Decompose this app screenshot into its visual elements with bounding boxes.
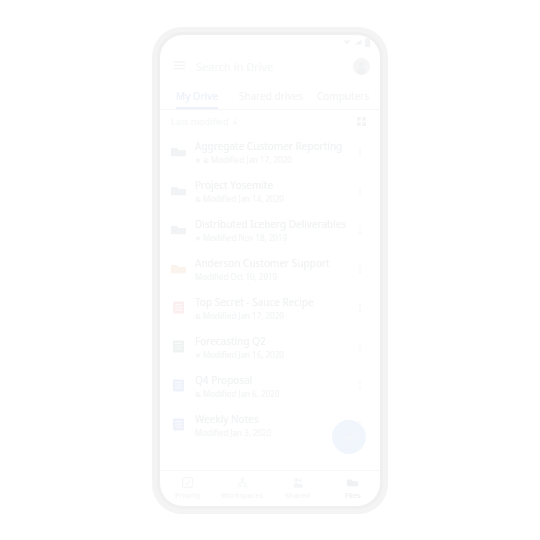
- staticText: Modified Jan 3, 2020: [195, 427, 272, 438]
- staticText: Modified Jan 14, 2020: [203, 193, 284, 204]
- staticText: Modified Nov 18, 2019: [203, 232, 287, 243]
- staticText: Distributed Iceberg Deliverables: [195, 217, 347, 231]
- staticText: Top Secret - Sauce Recipe: [195, 295, 314, 309]
- staticText: My Drive: [176, 89, 219, 103]
- staticText: Modified Jan 17, 2020: [203, 310, 284, 321]
- staticText: Modified Oct 10, 2019: [195, 271, 278, 282]
- button[interactable]: More options: [351, 416, 369, 434]
- button[interactable]: Open navigation menu: [170, 57, 188, 75]
- staticText: Forecasting Q2: [195, 334, 266, 348]
- button[interactable]: Weekly Notes: [160, 405, 380, 444]
- button[interactable]: Switch to grid view: [353, 113, 369, 129]
- button[interactable]: Distributed Iceberg Deliverables: [160, 210, 380, 249]
- staticText: Shared drives: [239, 89, 303, 103]
- staticText: Modified Jan 16, 2020: [203, 349, 284, 360]
- staticText: Workspaces: [221, 490, 264, 500]
- button[interactable]: Files: [325, 470, 380, 506]
- staticText: Q4 Proposal: [195, 373, 253, 387]
- staticText: Priority: [175, 490, 201, 500]
- staticText: Weekly Notes: [195, 412, 259, 426]
- staticText: Computers: [317, 89, 370, 103]
- staticText: Shared: [285, 490, 310, 500]
- staticText: Aggregate Customer Reporting: [195, 139, 343, 153]
- button[interactable]: Account: [353, 58, 370, 75]
- staticText: Modified Jan 17, 2020: [211, 154, 292, 165]
- button[interactable]: Aggregate Customer Reporting: [160, 132, 380, 171]
- staticText: Files: [345, 490, 361, 500]
- button[interactable]: My Drive: [160, 83, 234, 109]
- staticText: Project Yosemite: [195, 178, 274, 192]
- button[interactable]: Anderson Customer Support: [160, 249, 380, 288]
- button[interactable]: Last modified: [171, 115, 239, 127]
- staticText: Modified Jan 6, 2020: [203, 388, 280, 399]
- button[interactable]: Priority: [160, 470, 215, 506]
- staticText: Last modified: [171, 115, 229, 127]
- button[interactable]: Create new: [332, 420, 366, 454]
- staticText: Anderson Customer Support: [195, 256, 330, 270]
